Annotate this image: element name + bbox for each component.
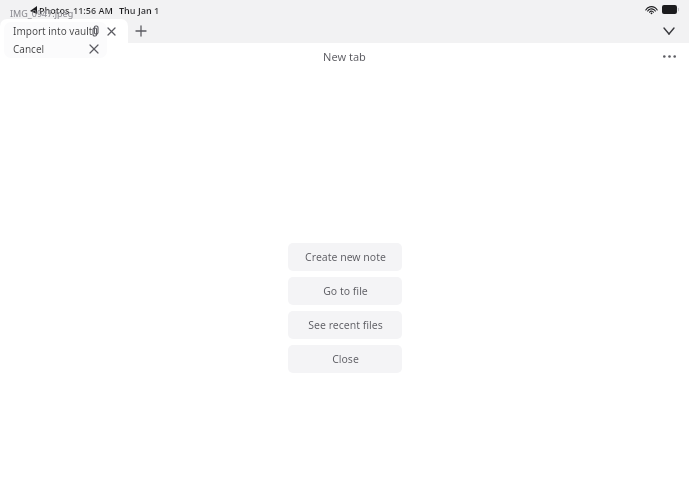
staticText: See recent files — [308, 318, 383, 332]
staticText: Thu Jan 1 — [119, 4, 160, 16]
button[interactable]: Close tab — [103, 23, 119, 39]
button[interactable]: Go to file — [288, 277, 402, 305]
button[interactable]: See recent files — [288, 311, 402, 339]
staticText: Go to file — [323, 284, 368, 298]
staticText: Cancel — [13, 42, 45, 56]
staticText: New tab — [323, 49, 366, 64]
staticText: Close — [332, 352, 359, 366]
button[interactable]: More options — [657, 44, 681, 68]
button[interactable]: Close tab — [0, 19, 128, 43]
button[interactable]: Show tabs — [657, 19, 681, 43]
button[interactable]: Create new note — [288, 243, 402, 271]
staticText: 11:56 AM — [73, 4, 113, 16]
button[interactable]: Cancel — [4, 40, 107, 58]
staticText: Import into vault — [13, 24, 93, 38]
button[interactable]: New tab — [128, 19, 154, 43]
button[interactable]: Close — [288, 345, 402, 373]
staticText: Create new note — [305, 250, 386, 264]
button[interactable]: Import into vault — [4, 22, 107, 40]
staticText: Photos — [39, 4, 70, 16]
staticText: IMG_0947.jpeg — [10, 7, 74, 19]
